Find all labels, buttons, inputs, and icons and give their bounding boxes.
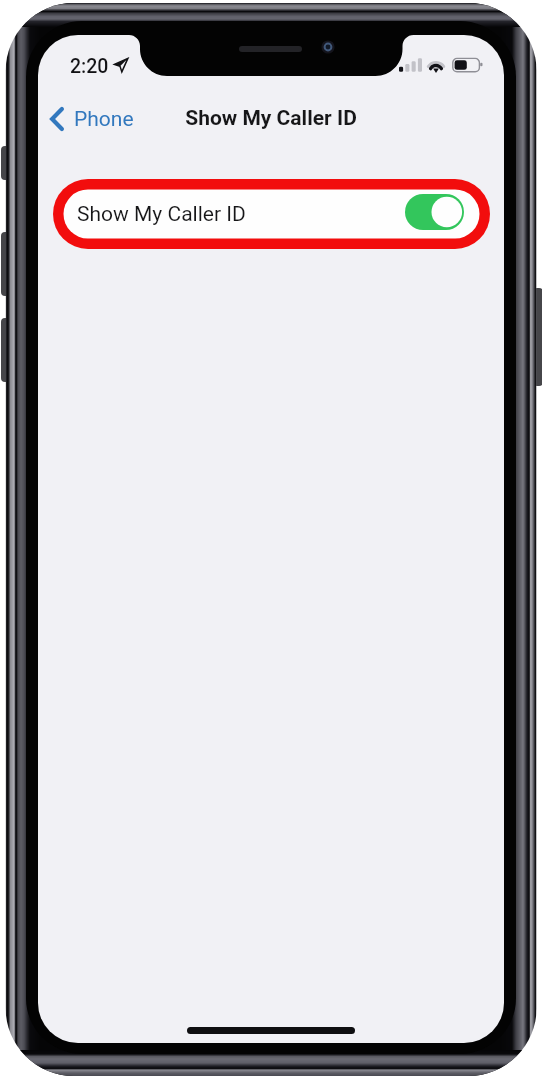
staticText: 2:20 bbox=[70, 55, 109, 78]
staticText: Show My Caller ID bbox=[185, 106, 357, 131]
button[interactable]: Show My Caller ID toggle, on bbox=[405, 194, 464, 230]
button[interactable]: Show My Caller ID bbox=[53, 179, 490, 249]
staticText: Phone bbox=[74, 107, 134, 132]
button[interactable]: Phone bbox=[50, 97, 134, 141]
staticText: Show My Caller ID bbox=[77, 202, 246, 227]
